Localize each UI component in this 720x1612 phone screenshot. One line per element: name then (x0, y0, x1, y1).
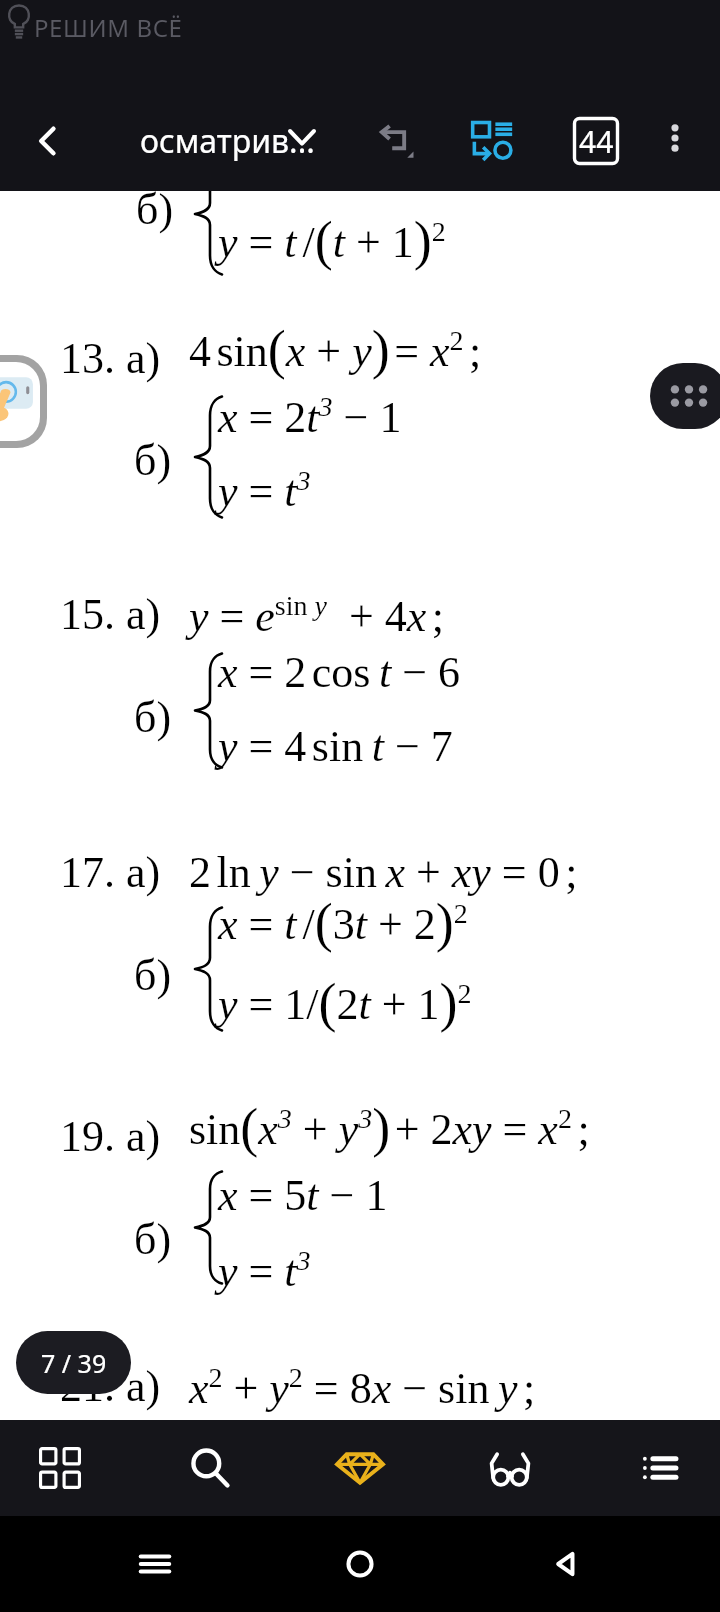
staticText: y = t /(t + 1)2 (218, 211, 446, 271)
button[interactable]: Reading mode (462, 1420, 558, 1516)
staticText: x = 2 cos t − 6 (218, 648, 461, 697)
button[interactable]: Premium (312, 1420, 408, 1516)
button[interactable]: Tools (650, 363, 720, 429)
staticText: 19. (60, 1112, 115, 1161)
staticText: y = 4 sin t − 7 (218, 722, 453, 771)
staticText: y = t3 (218, 1245, 311, 1295)
button[interactable]: осматрив... (140, 105, 345, 177)
button[interactable]: Home (310, 1516, 410, 1612)
staticText: РЕШИМ ВСЁ (34, 11, 183, 44)
staticText: 4 sin(x + y) = x2 ; (189, 320, 482, 380)
staticText: б) (136, 191, 174, 234)
staticText: 21. (60, 1362, 115, 1411)
staticText: а) (126, 590, 161, 639)
staticText: б) (134, 436, 172, 485)
staticText: осматрив... (140, 119, 315, 163)
staticText: б) (134, 693, 172, 742)
button[interactable]: Back (515, 1516, 615, 1612)
staticText: y = esin y + 4x ; (189, 590, 445, 640)
staticText: x = 5t − 1 (218, 1171, 388, 1220)
button[interactable]: Search (162, 1420, 258, 1516)
button[interactable]: More options (644, 107, 706, 169)
staticText: б) (134, 951, 172, 1000)
staticText: x2 + y2 = 8x − sin y ; (189, 1362, 536, 1412)
staticText: y = 1/(2t + 1)2 (218, 973, 472, 1033)
staticText: 15. (60, 590, 115, 639)
staticText: x = t /(3t + 2)2 (218, 893, 468, 953)
button[interactable]: Undo (366, 107, 434, 175)
staticText: 44 (579, 121, 614, 162)
staticText: а) (126, 848, 161, 897)
staticText: 7 / 39 (41, 1346, 107, 1380)
staticText: а) (126, 1112, 161, 1161)
staticText: y = t3 (218, 465, 311, 515)
staticText: б) (134, 1215, 172, 1264)
button[interactable]: Contents (612, 1420, 708, 1516)
staticText: sin(x3 + y3) + 2xy = x2 ; (189, 1098, 590, 1158)
staticText: 13. (60, 334, 115, 383)
button[interactable]: Layout mode (458, 107, 526, 175)
button[interactable]: Back (14, 107, 82, 175)
button[interactable]: Recents (105, 1516, 205, 1612)
staticText: 2 ln y − sin x + xy = 0 ; (189, 848, 578, 897)
button[interactable]: Page number (562, 107, 630, 175)
staticText: а) (126, 334, 161, 383)
staticText: 17. (60, 848, 115, 897)
button[interactable]: Touch assistant (0, 355, 47, 448)
staticText: x = 2t3 − 1 (218, 391, 402, 441)
staticText: а) (126, 1362, 161, 1411)
button[interactable]: Grid view (12, 1420, 108, 1516)
